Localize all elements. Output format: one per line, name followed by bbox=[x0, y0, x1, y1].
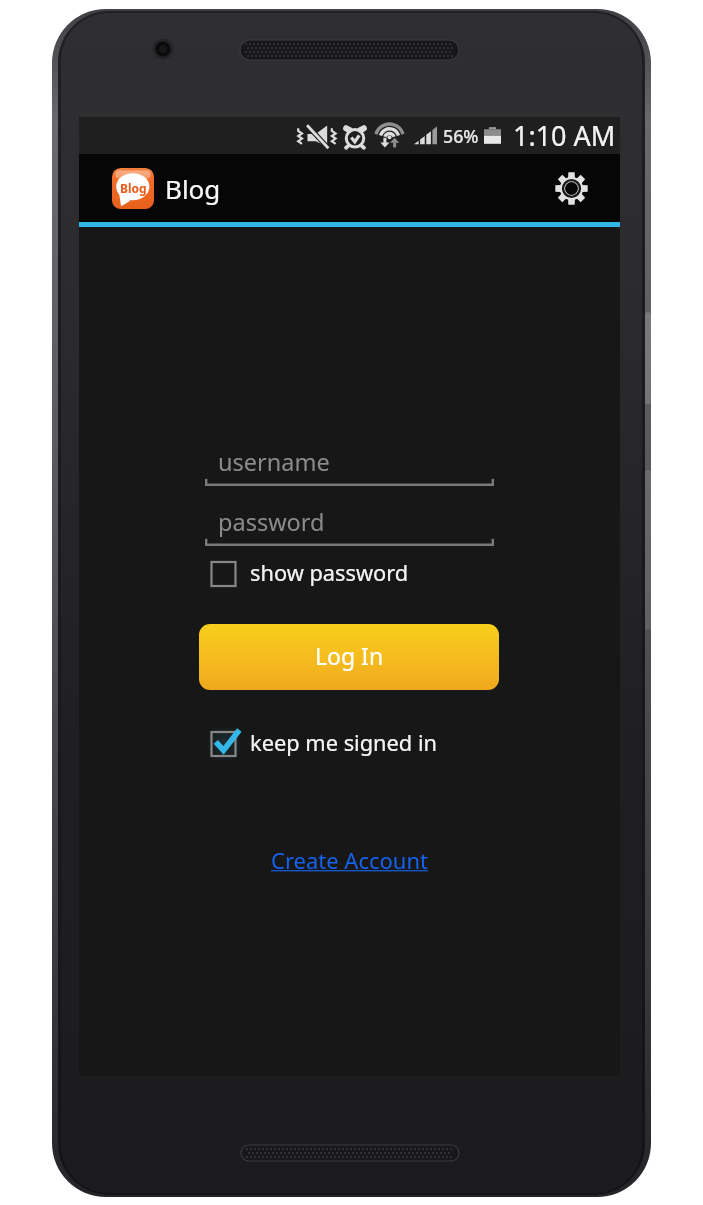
staticText: 1:10 AM bbox=[513, 117, 616, 154]
staticText: 56% bbox=[443, 124, 479, 148]
staticText: Blog bbox=[165, 171, 221, 206]
staticText: Blog bbox=[120, 180, 147, 196]
button[interactable]: show password bbox=[205, 553, 409, 595]
button[interactable]: Settings bbox=[549, 166, 593, 210]
button[interactable]: Log In bbox=[199, 624, 499, 690]
staticText: Create Account bbox=[271, 845, 428, 875]
button[interactable]: username bbox=[205, 441, 494, 486]
staticText: Log In bbox=[315, 640, 384, 671]
staticText: show password bbox=[250, 558, 409, 588]
staticText: username bbox=[218, 446, 330, 478]
staticText: password bbox=[218, 506, 325, 538]
button[interactable]: keep me signed in bbox=[205, 723, 438, 765]
staticText: keep me signed in bbox=[250, 728, 438, 758]
button[interactable]: password bbox=[205, 501, 494, 546]
button[interactable]: Create Account bbox=[263, 841, 436, 879]
